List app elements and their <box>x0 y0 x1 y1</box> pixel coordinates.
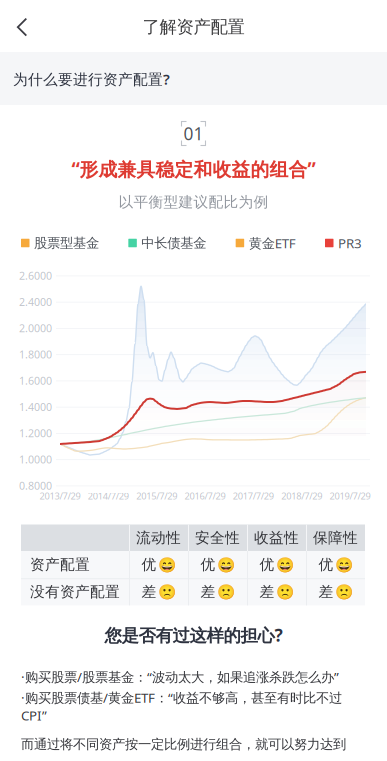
staticText: 1.6000 <box>19 373 52 388</box>
staticText: 没有资产配置 <box>30 583 120 601</box>
staticText: 1.0000 <box>19 452 52 466</box>
staticText: 优 <box>318 556 333 574</box>
staticText: 以平衡型建议配比为例 <box>118 193 268 211</box>
staticText: 黄金ETF <box>249 234 296 252</box>
staticText: 中长债基金 <box>141 235 206 251</box>
staticText: 🙁 <box>334 583 352 600</box>
staticText: 2019/7/29 <box>329 490 370 502</box>
staticText: 🙁 <box>216 583 234 600</box>
staticText: 股票型基金 <box>34 235 99 251</box>
staticText: ·购买股票/股票基金：“波动太大，如果追涨杀跌怎么办” <box>21 668 339 686</box>
staticText: 😄 <box>157 556 175 573</box>
staticText: 差 <box>200 583 215 601</box>
staticText: 2016/7/29 <box>184 490 225 502</box>
staticText: 差 <box>141 583 156 601</box>
staticText: 收益性 <box>254 529 299 547</box>
staticText: 2013/7/29 <box>39 490 80 502</box>
staticText: 优 <box>259 556 274 574</box>
staticText: 安全性 <box>195 529 240 547</box>
staticText: 流动性 <box>136 529 181 547</box>
staticText: 为什么要进行资产配置? <box>13 69 170 89</box>
staticText: ·购买股票债基/黄金ETF：“收益不够高，甚至有时比不过CPI” <box>21 689 342 724</box>
staticText: 差 <box>259 583 274 601</box>
staticText: 优 <box>141 556 156 574</box>
staticText: 🙁 <box>275 583 293 600</box>
staticText: 1.8000 <box>19 347 52 361</box>
staticText: PR3 <box>338 234 362 252</box>
staticText: 2.6000 <box>19 268 52 283</box>
staticText: 2.0000 <box>19 321 52 335</box>
staticText: 差 <box>318 583 333 601</box>
staticText: 了解资产配置 <box>142 16 244 38</box>
staticText: 而通过将不同资产按一定比例进行组合，就可以努力达到 <box>21 736 346 752</box>
staticText: 😄 <box>216 556 234 573</box>
staticText: 1.4000 <box>19 400 52 414</box>
staticText: 😄 <box>334 556 352 573</box>
staticText: 资产配置 <box>30 556 90 574</box>
staticText: 01 <box>183 122 203 145</box>
staticText: 2014/7/29 <box>88 490 129 502</box>
staticText: 🙁 <box>157 583 175 600</box>
staticText: 0.8000 <box>19 478 52 493</box>
staticText: 2017/7/29 <box>233 490 274 502</box>
staticText: 1.2000 <box>19 426 52 440</box>
staticText: 2.4000 <box>19 295 52 309</box>
staticText: 2015/7/29 <box>136 490 177 502</box>
staticText: 您是否有过这样的担心? <box>104 623 282 646</box>
staticText: 2018/7/29 <box>281 490 322 502</box>
button[interactable]: Back <box>0 5 44 49</box>
staticText: 优 <box>200 556 215 574</box>
staticText: “形成兼具稳定和收益的组合” <box>71 157 315 181</box>
staticText: 保障性 <box>313 529 358 547</box>
staticText: 😄 <box>275 556 293 573</box>
